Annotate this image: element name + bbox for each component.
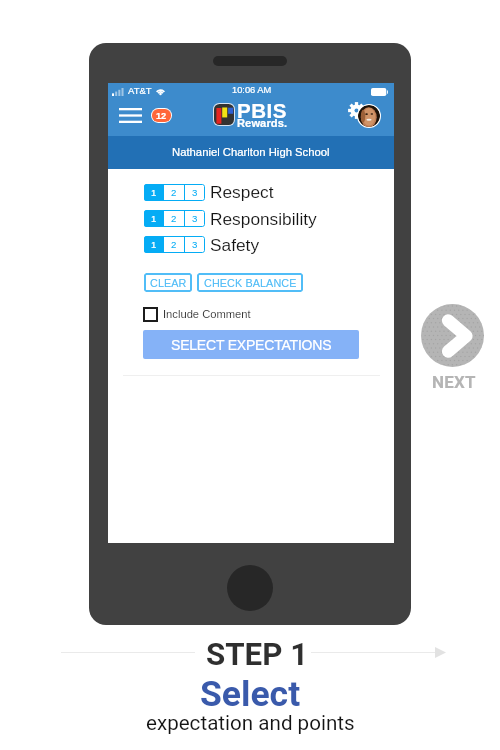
staticText: Rewards. bbox=[237, 117, 288, 129]
button[interactable]: 1 bbox=[144, 210, 163, 227]
button[interactable]: Next bbox=[421, 304, 484, 367]
button[interactable]: CHECK BALANCE bbox=[197, 273, 303, 292]
staticText: 1 bbox=[151, 213, 157, 224]
staticText: Include Comment bbox=[163, 308, 251, 321]
button[interactable]: 3 bbox=[185, 236, 205, 253]
staticText: 10:06 AM bbox=[232, 85, 272, 95]
button[interactable]: Include Comment bbox=[143, 307, 251, 322]
button[interactable]: SELECT EXPECTATIONS bbox=[143, 330, 359, 359]
button[interactable]: Settings bbox=[346, 101, 382, 131]
staticText: 1 bbox=[151, 239, 157, 250]
staticText: 3 bbox=[192, 213, 198, 224]
staticText: Respect bbox=[210, 182, 274, 201]
button[interactable]: CLEAR bbox=[144, 273, 192, 292]
button[interactable]: 1 bbox=[144, 236, 163, 253]
staticText: 2 bbox=[171, 187, 177, 198]
staticText: AT&T bbox=[128, 85, 152, 96]
staticText: 1 bbox=[151, 187, 157, 198]
staticText: CHECK BALANCE bbox=[204, 277, 297, 289]
staticText: expectation and points bbox=[146, 711, 355, 735]
staticText: 3 bbox=[192, 187, 198, 198]
staticText: PBIS bbox=[237, 99, 288, 122]
staticText: 12 bbox=[156, 111, 167, 121]
button[interactable]: 2 bbox=[164, 210, 184, 227]
button[interactable]: 12 bbox=[151, 108, 172, 123]
staticText: Safety bbox=[210, 235, 260, 254]
staticText: Responsibility bbox=[210, 209, 317, 228]
staticText: 2 bbox=[171, 239, 177, 250]
button[interactable]: 1 bbox=[144, 184, 163, 201]
button[interactable]: Menu bbox=[117, 104, 143, 127]
staticText: NEXT bbox=[432, 372, 476, 392]
staticText: 3 bbox=[192, 239, 198, 250]
staticText: Nathaniel Charlton High School bbox=[172, 146, 330, 159]
staticText: 2 bbox=[171, 213, 177, 224]
staticText: Select bbox=[200, 673, 301, 715]
staticText: SELECT EXPECTATIONS bbox=[171, 337, 332, 353]
button[interactable]: 2 bbox=[164, 184, 184, 201]
button[interactable]: 3 bbox=[185, 210, 205, 227]
staticText: CLEAR bbox=[150, 277, 187, 289]
staticText: STEP 1 bbox=[206, 636, 309, 673]
button[interactable]: 2 bbox=[164, 236, 184, 253]
button[interactable]: 3 bbox=[185, 184, 205, 201]
